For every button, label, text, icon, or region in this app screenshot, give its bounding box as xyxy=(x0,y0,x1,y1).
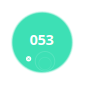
button[interactable]: 053 items xyxy=(11,11,74,74)
staticText: 053 xyxy=(30,30,54,49)
button[interactable]: Clear xyxy=(24,54,34,64)
